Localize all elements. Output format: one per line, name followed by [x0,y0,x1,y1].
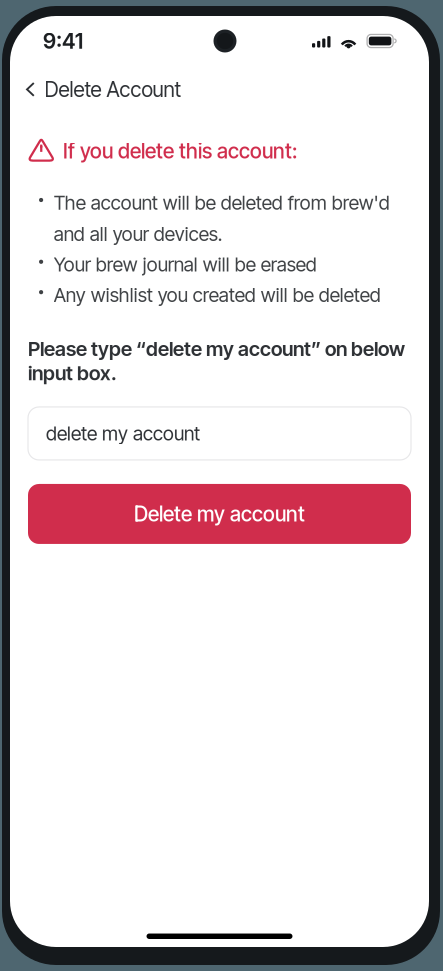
staticText: Delete Account [44,77,181,102]
staticText: Delete my account [134,501,305,526]
staticText: 9:41 [43,28,83,54]
staticText: If you delete this account: [63,138,297,163]
staticText: Your brew journal will be erased [54,253,317,276]
staticText: Please type “delete my account” on below… [28,337,405,385]
staticText: Any wishlist you created will be deleted [54,283,381,307]
button[interactable]: Delete Account [10,66,429,113]
staticText: The account will be deleted from brew'd … [54,191,390,246]
staticText: delete my account [46,422,200,445]
button[interactable]: Delete my account [28,484,411,544]
